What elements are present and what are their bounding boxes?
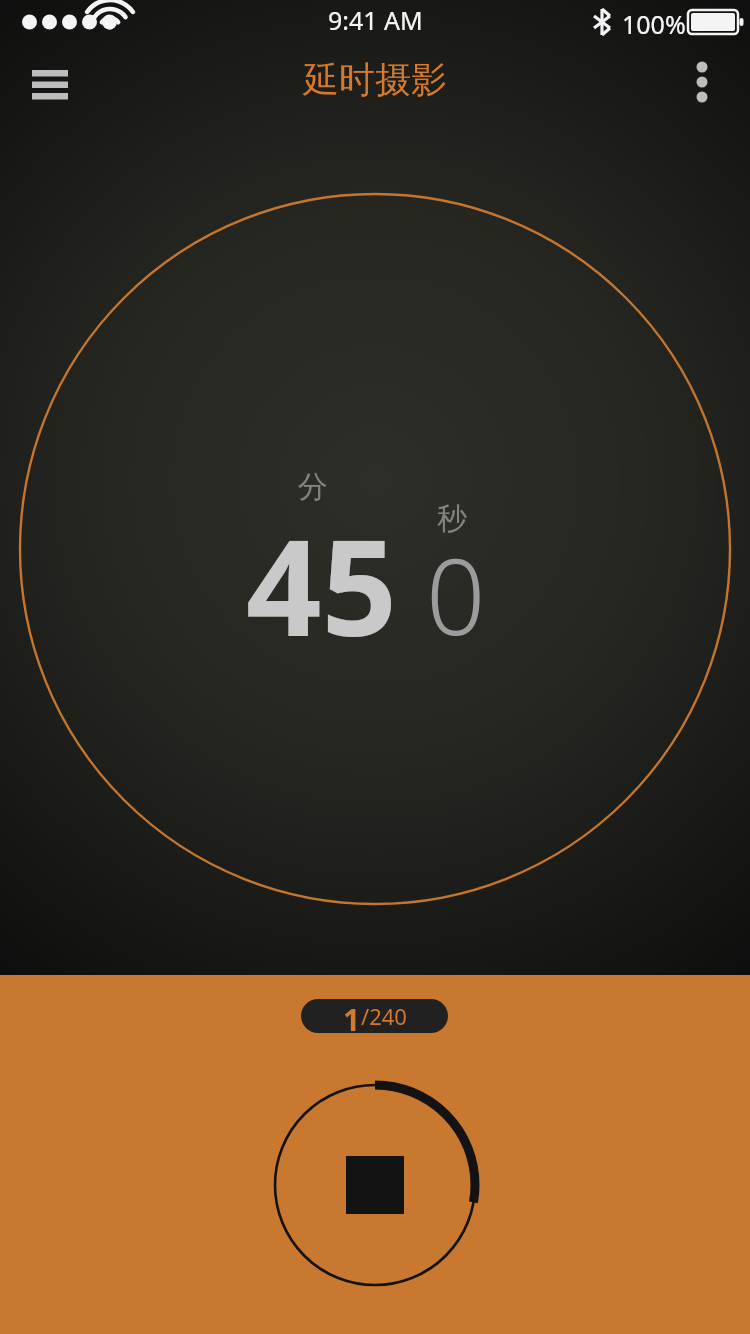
staticText: 分 [298,468,328,506]
button[interactable]: More options [674,54,730,110]
button[interactable]: Menu [14,44,88,118]
staticText: 100% [622,7,686,41]
staticText: 延时摄影 [303,57,447,102]
staticText: 0 [426,524,486,666]
staticText: 9:41 AM [328,3,423,37]
button[interactable]: 1 [301,999,448,1033]
staticText: 秒 [437,500,467,538]
staticText: 45 [246,495,398,675]
button[interactable]: Stop recording [265,1075,485,1295]
staticText: /240 [361,1001,407,1031]
staticText: 1 [343,999,361,1033]
